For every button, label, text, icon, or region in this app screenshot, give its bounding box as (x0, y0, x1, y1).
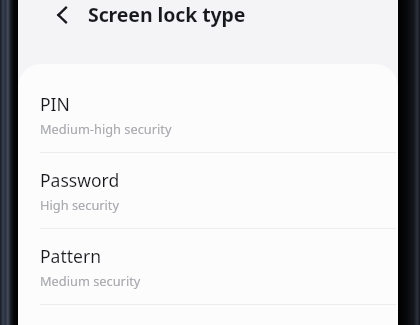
staticText: Medium-high security (40, 120, 172, 137)
staticText: Screen lock type (88, 1, 246, 28)
staticText: Password (40, 168, 120, 192)
button[interactable]: Navigate up (47, 0, 77, 30)
staticText: PIN (40, 92, 70, 116)
button[interactable]: Pattern (18, 229, 398, 304)
staticText: High security (40, 196, 120, 213)
button[interactable]: Password (18, 153, 398, 228)
staticText: Pattern (40, 244, 101, 268)
staticText: Medium security (40, 272, 141, 289)
button[interactable]: PIN (18, 77, 398, 152)
